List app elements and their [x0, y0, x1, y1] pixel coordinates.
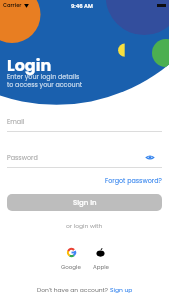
staticText: Apple [93, 263, 109, 271]
staticText: Enter your login details to access your … [7, 72, 83, 89]
staticText: or login with [66, 222, 103, 230]
button[interactable]: Forgot password? [104, 175, 163, 186]
staticText: Password [7, 153, 145, 162]
button[interactable]: Google [63, 244, 80, 261]
staticText: Login [7, 54, 52, 76]
staticText: Sign up [110, 286, 133, 294]
button[interactable]: Apple [92, 244, 109, 261]
staticText: Carrier [3, 2, 22, 9]
staticText: Email [7, 117, 162, 126]
staticText: Google [61, 263, 81, 271]
button[interactable]: Sign in [7, 194, 162, 211]
staticText: Don't have an account? [37, 286, 110, 294]
button[interactable]: Show password [145, 152, 155, 162]
staticText: Sign in [73, 198, 97, 208]
staticText: 9:46 AM [71, 2, 93, 10]
button[interactable]: Sign up [110, 286, 133, 294]
staticText: Forgot password? [105, 176, 162, 185]
